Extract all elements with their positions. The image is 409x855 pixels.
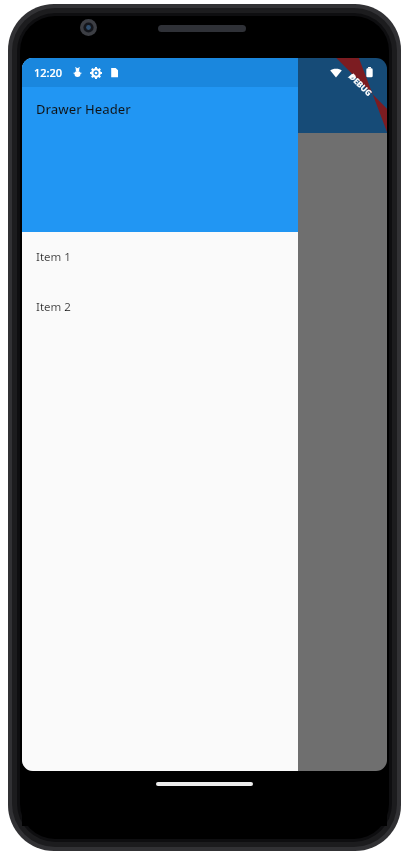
staticText: DEBUG [347,71,375,98]
staticText: Item 2 [36,299,71,315]
staticText: 12:20 [34,65,63,80]
staticText: Item 1 [36,249,71,265]
staticText: Drawer Header [36,100,131,118]
button[interactable]: Item 2 [22,282,298,332]
button[interactable]: Item 1 [22,232,298,282]
